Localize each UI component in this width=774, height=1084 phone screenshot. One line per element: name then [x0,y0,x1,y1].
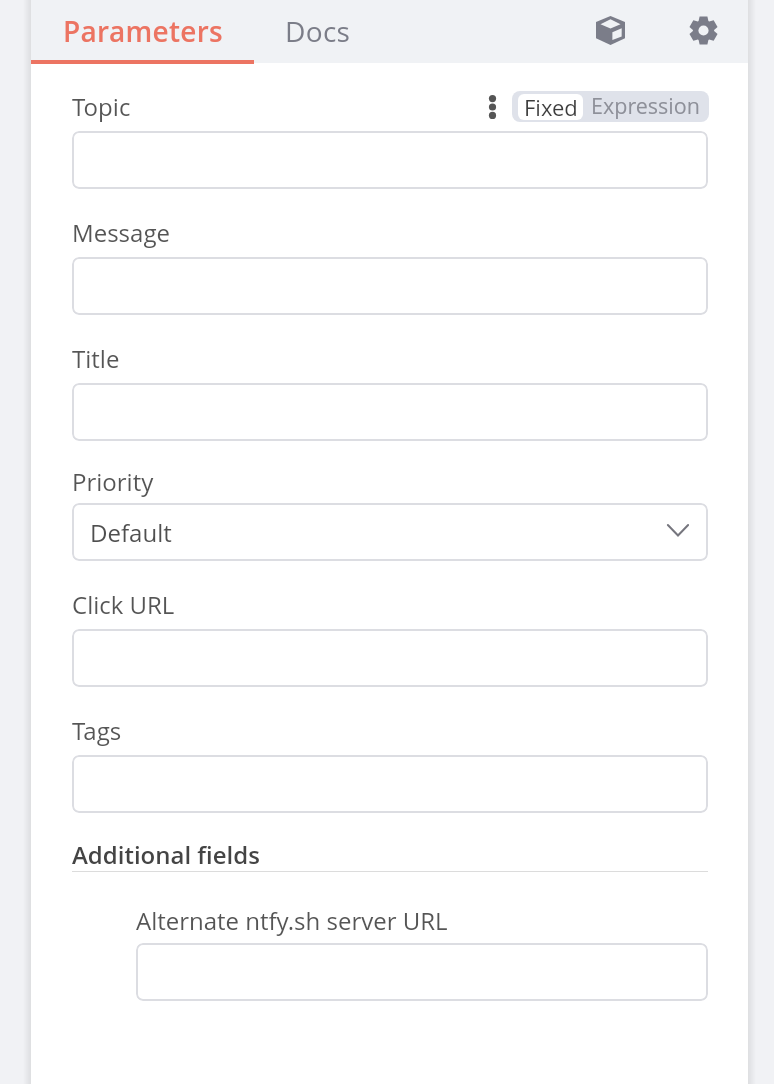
staticText: Additional fields [72,838,260,871]
staticText: Fixed [524,94,578,118]
staticText: Alternate ntfy.sh server URL [136,904,448,937]
button[interactable]: Default [72,503,708,561]
button[interactable] [72,131,708,189]
button[interactable]: Parameter options [481,91,503,123]
button[interactable]: Expression [583,91,707,122]
staticText: Docs [285,12,351,50]
button[interactable] [72,755,708,813]
button[interactable]: Docs [252,0,383,63]
staticText: Click URL [72,588,175,621]
button[interactable] [72,629,708,687]
staticText: Tags [72,714,122,747]
staticText: Title [72,342,120,375]
staticText: Topic [72,90,131,123]
staticText: Expression [591,91,700,120]
staticText: Parameters [63,12,223,50]
button[interactable] [72,383,708,441]
staticText: Default [90,516,172,549]
button[interactable]: Parameters [31,0,254,63]
button[interactable] [72,257,708,315]
button[interactable] [136,943,708,1001]
button[interactable]: Settings [674,1,732,59]
staticText: Message [72,216,170,249]
button[interactable]: Fixed [518,94,583,120]
button[interactable]: Node documentation [581,1,639,59]
staticText: Priority [72,465,154,498]
